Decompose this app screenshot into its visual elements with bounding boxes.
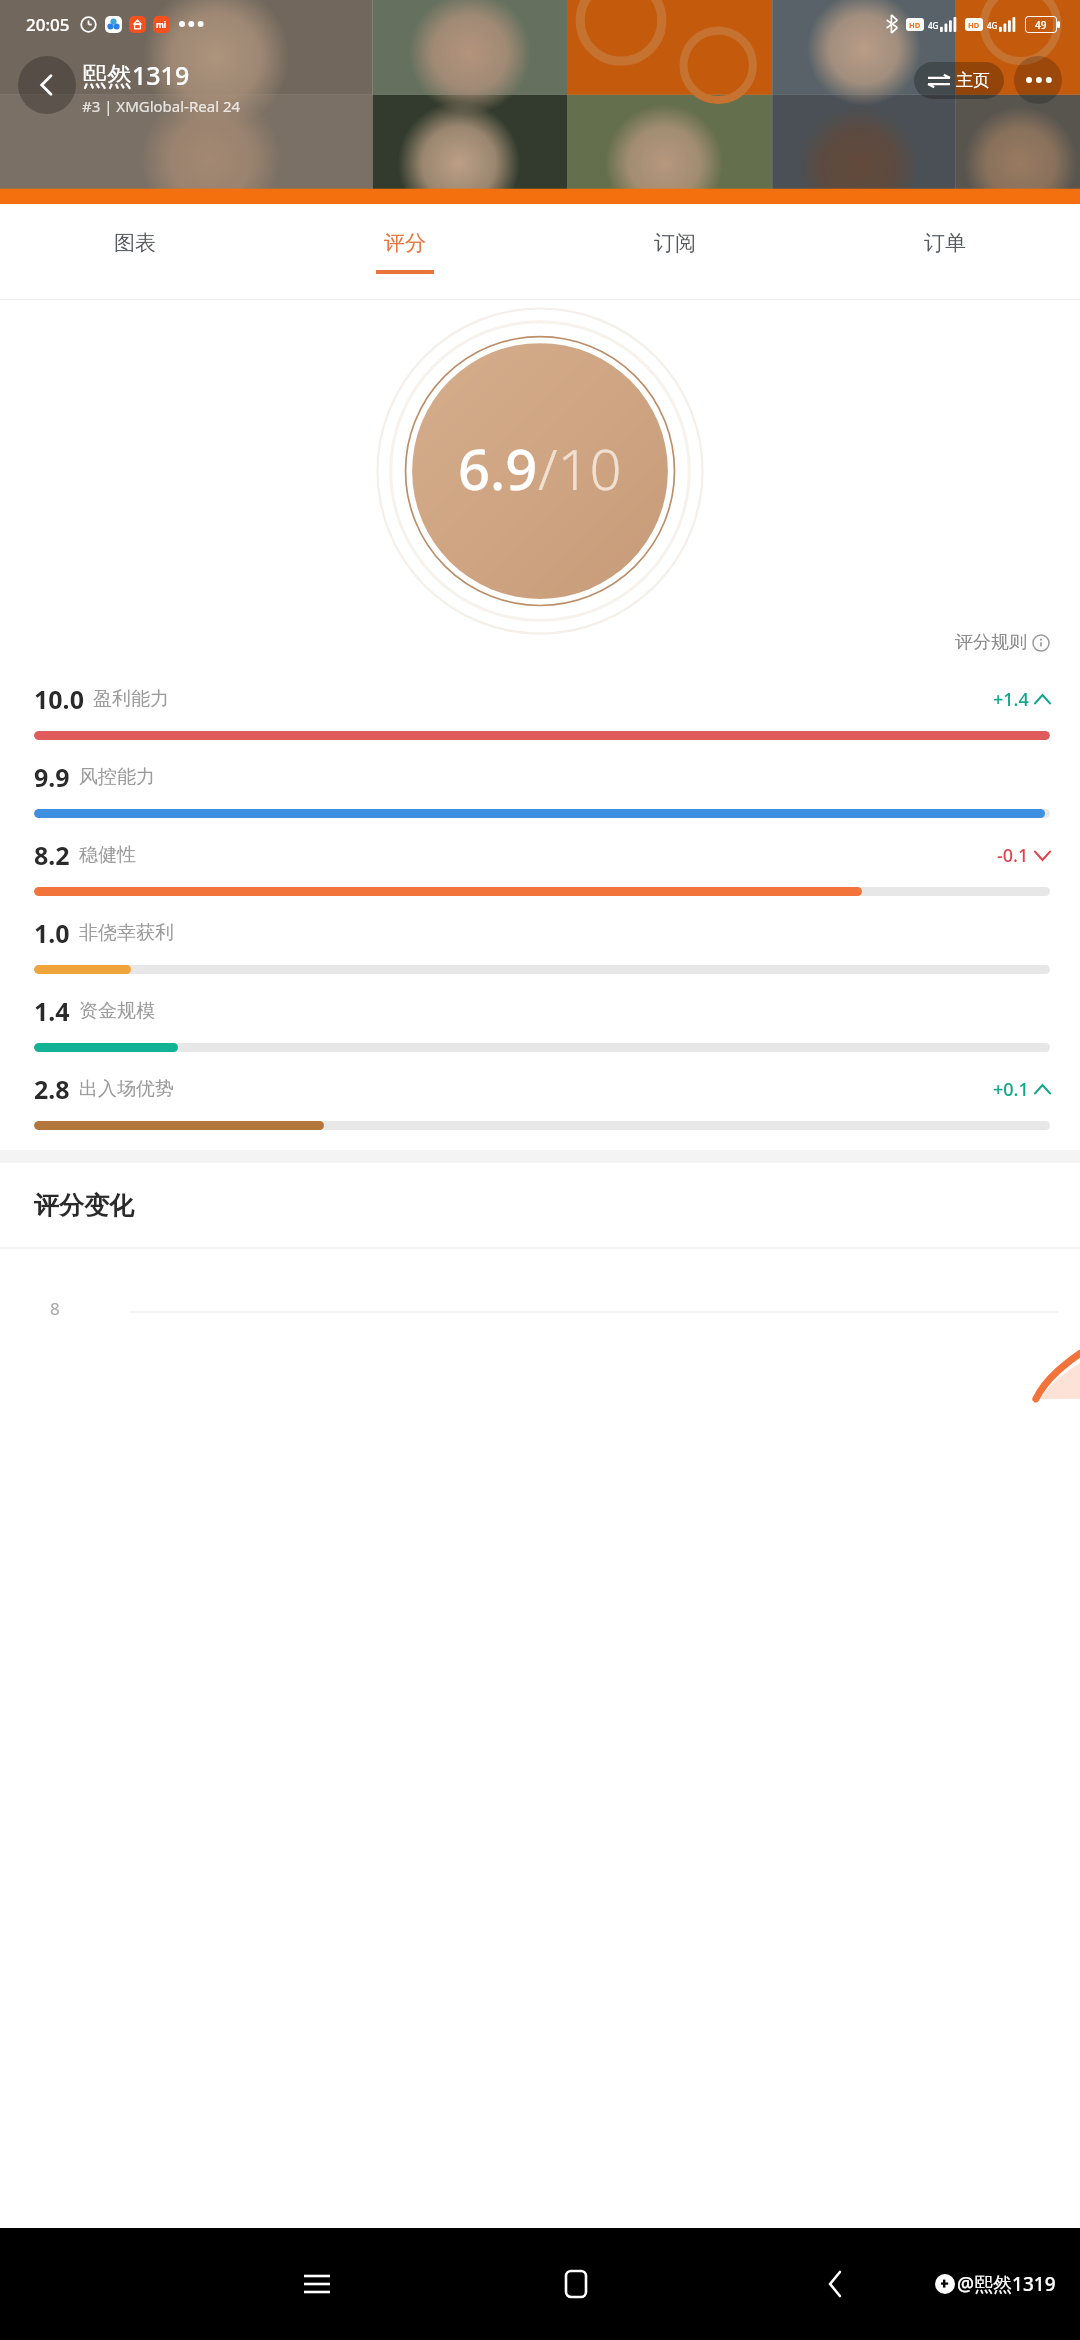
staticText: HD [909, 20, 921, 30]
button[interactable]: Back [803, 2252, 867, 2316]
staticText: @熙然1319 [957, 2271, 1056, 2297]
button[interactable]: 订阅 [540, 204, 810, 300]
staticText: +0.1 [993, 1077, 1029, 1102]
staticText: 盈利能力 [93, 687, 169, 711]
staticText: 熙然1319 [82, 58, 190, 92]
button[interactable]: Back [18, 56, 76, 114]
button[interactable]: Recent apps [285, 2252, 349, 2316]
staticText: 图表 [114, 230, 156, 256]
staticText: 订阅 [654, 230, 696, 256]
staticText: 9.9 [34, 760, 70, 794]
staticText: 10.0 [34, 682, 84, 716]
staticText: 1.4 [34, 994, 70, 1028]
button[interactable]: 评分 [270, 204, 540, 300]
staticText: 4G [928, 20, 939, 31]
button[interactable]: 订单 [810, 204, 1080, 300]
button[interactable]: Home [544, 2252, 608, 2316]
staticText: 主页 [956, 70, 990, 91]
staticText: 49 [1035, 18, 1047, 32]
staticText: /10 [538, 430, 622, 506]
staticText: 出入场优势 [79, 1077, 174, 1101]
button[interactable]: More options [1014, 56, 1062, 104]
button[interactable]: 2.8 [0, 1058, 1080, 1136]
staticText: 1.0 [34, 916, 70, 950]
staticText: 风控能力 [79, 765, 155, 789]
staticText: 20:05 [26, 13, 70, 36]
button[interactable]: 9.9 [0, 746, 1080, 824]
button[interactable]: 主页 [914, 62, 1004, 99]
button[interactable]: 图表 [0, 204, 270, 300]
staticText: 非侥幸获利 [79, 921, 174, 945]
staticText: 8.2 [34, 838, 70, 872]
staticText: HD [968, 20, 980, 30]
staticText: +1.4 [993, 687, 1029, 712]
staticText: 2.8 [34, 1072, 70, 1106]
button[interactable]: 1.4 [0, 980, 1080, 1058]
staticText: -0.1 [997, 843, 1029, 868]
staticText: 8 [50, 1297, 60, 1320]
button[interactable]: 评分规则 [951, 627, 1054, 658]
button[interactable]: 1.0 [0, 902, 1080, 980]
staticText: 6.9 [458, 430, 538, 506]
button[interactable]: 8.2 [0, 824, 1080, 902]
staticText: 评分规则 [955, 631, 1027, 654]
staticText: 评分 [384, 230, 426, 256]
button[interactable]: 评分变化 [0, 1163, 1080, 1247]
staticText: 订单 [924, 230, 966, 256]
staticText: mi [156, 19, 167, 30]
staticText: #3 | XMGlobal-Real 24 [82, 96, 241, 116]
staticText: 4G [987, 20, 998, 31]
staticText: 评分变化 [34, 1190, 134, 1221]
staticText: 资金规模 [79, 999, 155, 1023]
button[interactable]: 10.0 [0, 668, 1080, 746]
staticText: 稳健性 [79, 843, 136, 867]
